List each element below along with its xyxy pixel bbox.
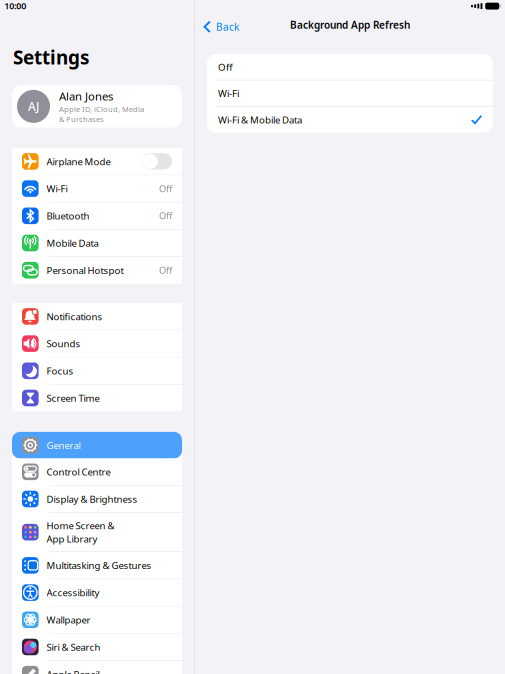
button[interactable]: Display & Brightness — [12, 486, 182, 512]
button[interactable]: Off — [207, 54, 493, 80]
button[interactable]: Accessibility — [12, 579, 182, 606]
staticText: Wi-Fi — [47, 182, 68, 195]
button[interactable]: Wallpaper — [12, 606, 182, 633]
staticText: General — [47, 439, 81, 452]
staticText: Focus — [47, 364, 74, 377]
staticText: Off — [218, 60, 233, 73]
staticText: Wallpaper — [47, 613, 91, 626]
button[interactable]: General — [12, 432, 182, 458]
staticText: Off — [159, 264, 172, 276]
staticText: Settings — [13, 44, 89, 70]
staticText: Personal Hotspot — [47, 264, 124, 277]
staticText: Display & Brightness — [47, 492, 138, 506]
button[interactable]: Control Centre — [12, 458, 182, 485]
staticText: Airplane Mode — [47, 155, 111, 168]
staticText: Siri & Search — [47, 640, 101, 653]
staticText: App Library — [47, 532, 98, 545]
staticText: Apple Pencil — [47, 668, 100, 674]
staticText: Sounds — [47, 337, 81, 350]
button[interactable]: Home Screen & — [12, 513, 182, 551]
staticText: AJ — [28, 98, 39, 114]
staticText: Multitasking & Gestures — [47, 559, 152, 572]
staticText: Wi-Fi — [218, 87, 239, 100]
button[interactable]: AJ — [12, 85, 182, 128]
staticText: Home Screen & — [47, 519, 115, 532]
button[interactable]: Mobile Data — [12, 230, 182, 256]
button[interactable]: Wi-Fi — [207, 80, 493, 106]
staticText: Screen Time — [47, 391, 100, 405]
staticText: 10:00 — [4, 0, 26, 12]
staticText: Accessibility — [47, 586, 100, 599]
staticText: Notifications — [47, 310, 103, 323]
staticText: Background App Refresh — [290, 18, 410, 32]
button[interactable]: Airplane Mode — [12, 148, 182, 175]
button[interactable]: Multitasking & Gestures — [12, 552, 182, 579]
staticText: Off — [159, 182, 172, 195]
staticText: Mobile Data — [47, 236, 99, 250]
button[interactable]: Personal Hotspot — [12, 257, 182, 283]
button[interactable]: Apple Pencil — [12, 661, 182, 674]
staticText: Bluetooth — [47, 209, 90, 222]
button[interactable]: Sounds — [12, 330, 182, 357]
staticText: Off — [159, 210, 172, 222]
staticText: Apple ID, iCloud, Media — [59, 104, 144, 114]
staticText: Wi-Fi & Mobile Data — [218, 113, 302, 126]
button[interactable]: Wi-Fi — [12, 175, 182, 202]
button[interactable]: Siri & Search — [12, 634, 182, 660]
button[interactable]: Bluetooth — [12, 202, 182, 229]
button[interactable]: Focus — [12, 357, 182, 384]
button[interactable]: Notifications — [12, 303, 182, 330]
staticText: & Purchases — [59, 114, 104, 124]
staticText: Back — [216, 20, 239, 34]
staticText: Control Centre — [47, 465, 111, 478]
button[interactable]: Screen Time — [12, 385, 182, 411]
button[interactable]: Wi-Fi & Mobile Data — [207, 107, 493, 133]
button[interactable]: Back — [199, 14, 243, 36]
staticText: Alan Jones — [59, 88, 113, 104]
